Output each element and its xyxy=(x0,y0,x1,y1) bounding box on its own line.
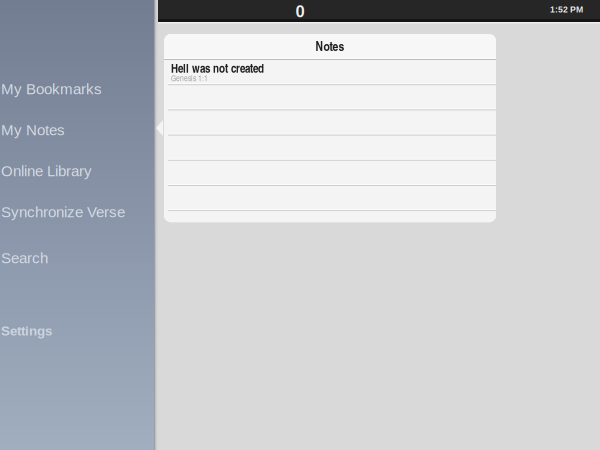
button[interactable] xyxy=(164,85,496,110)
staticText: My Notes xyxy=(1,122,65,138)
staticText: Notes xyxy=(315,37,344,55)
button[interactable] xyxy=(164,110,496,136)
staticText: Settings xyxy=(1,324,52,338)
button[interactable]: Hell was not created xyxy=(164,60,496,85)
staticText: Genesis 1:1 xyxy=(171,72,208,84)
button[interactable]: My Notes xyxy=(0,117,154,143)
staticText: Hell was not created xyxy=(171,59,264,76)
button[interactable]: Synchronize Verse xyxy=(0,199,154,225)
staticText: 1:52 PM xyxy=(550,5,583,14)
button[interactable] xyxy=(164,186,496,211)
staticText: My Bookmarks xyxy=(1,81,102,97)
staticText: Synchronize Verse xyxy=(1,204,125,220)
button[interactable] xyxy=(164,161,496,186)
button[interactable]: Online Library xyxy=(0,158,154,184)
staticText: Search xyxy=(1,250,48,266)
button[interactable] xyxy=(164,136,496,161)
button[interactable]: My Bookmarks xyxy=(0,76,154,102)
button[interactable]: Search xyxy=(0,245,154,271)
staticText: 0 xyxy=(295,2,304,21)
staticText: Online Library xyxy=(1,163,92,179)
button[interactable]: Settings xyxy=(0,318,154,344)
